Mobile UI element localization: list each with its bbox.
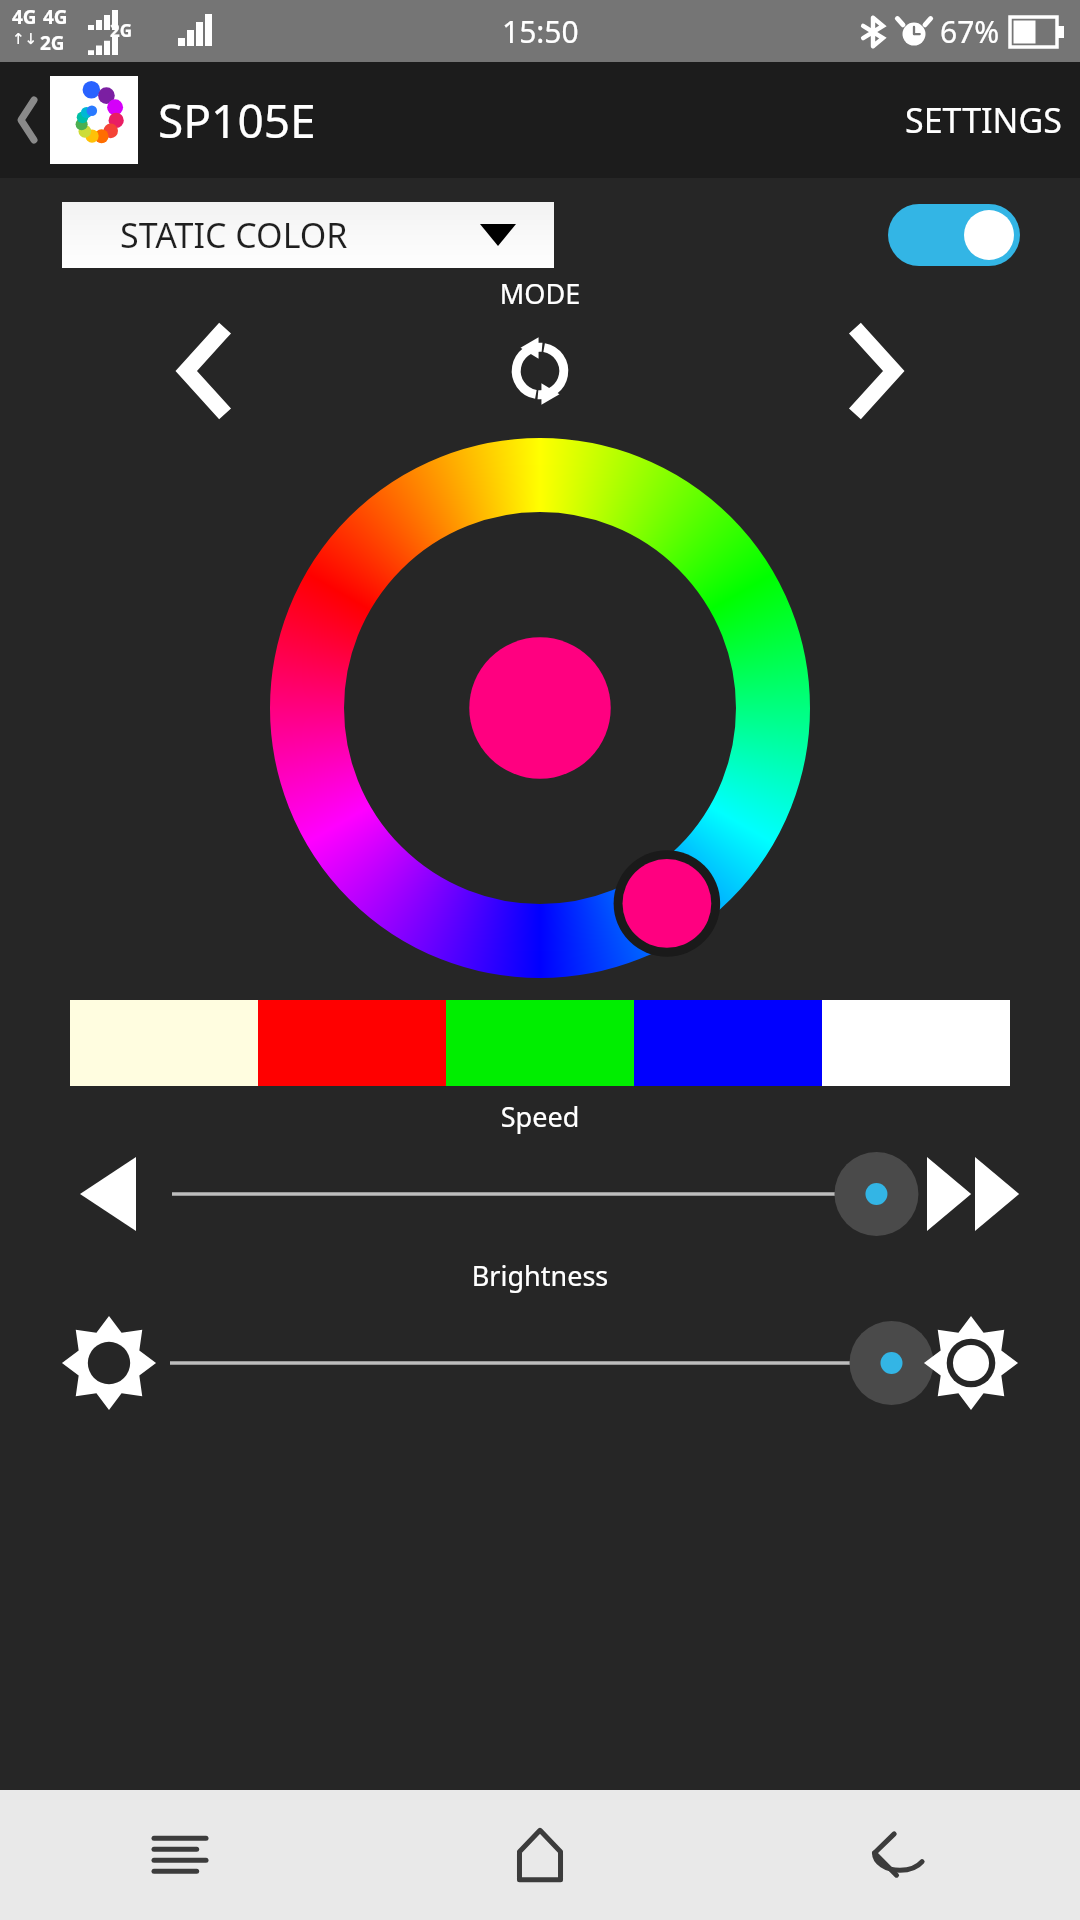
button[interactable]: Increase brightness <box>916 1308 1026 1418</box>
button[interactable]: Back <box>6 98 50 142</box>
button[interactable]: Faster <box>920 1139 1030 1249</box>
button[interactable]: Brightness slider <box>170 1318 910 1408</box>
staticText: SP105E <box>158 89 316 152</box>
staticText: 2G <box>110 19 133 42</box>
button[interactable]: Next mode <box>834 328 920 414</box>
staticText: MODE <box>0 275 1080 312</box>
button[interactable]: Home <box>360 1790 720 1920</box>
button[interactable]: Color wheel <box>0 430 1080 986</box>
staticText: Speed <box>0 1098 1080 1135</box>
button[interactable]: Previous mode <box>160 328 246 414</box>
button[interactable]: Slower <box>62 1148 154 1240</box>
staticText: 4G <box>43 4 68 30</box>
staticText: STATIC COLOR <box>120 212 348 258</box>
button[interactable]: SETTINGS <box>905 97 1062 143</box>
button[interactable]: Auto cycle <box>494 328 586 414</box>
staticText: 4G <box>12 4 37 30</box>
button[interactable]: Decrease brightness <box>54 1308 164 1418</box>
button[interactable]: STATIC COLOR <box>62 202 554 268</box>
staticText: SETTINGS <box>905 97 1062 143</box>
button[interactable]: Speed slider <box>172 1149 902 1239</box>
staticText: 2G <box>40 30 65 56</box>
staticText: 67% <box>940 11 1000 52</box>
staticText: ↑↓ <box>12 30 38 47</box>
button[interactable]: Menu <box>0 1790 360 1920</box>
staticText: 15:50 <box>502 11 579 52</box>
staticText: Brightness <box>0 1257 1080 1294</box>
button[interactable]: Back <box>720 1790 1080 1920</box>
button[interactable]: Power toggle <box>888 204 1020 266</box>
